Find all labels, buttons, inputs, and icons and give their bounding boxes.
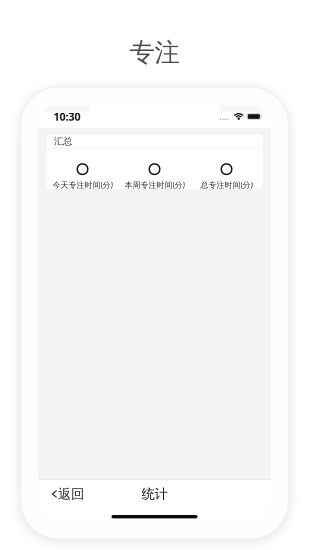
staticText: 专注 <box>129 37 179 68</box>
staticText: 今天专注时间(分) <box>52 179 112 190</box>
staticText: 总专注时间(分) <box>200 179 252 190</box>
staticText: 返回 <box>58 486 84 502</box>
button[interactable]: 返回 <box>38 481 93 507</box>
staticText: 本周专注时间(分) <box>124 179 184 190</box>
staticText: 统计 <box>141 486 167 502</box>
staticText: 10:30 <box>53 109 80 124</box>
staticText: 汇总 <box>54 136 72 147</box>
button[interactable]: 统计 <box>130 481 178 507</box>
